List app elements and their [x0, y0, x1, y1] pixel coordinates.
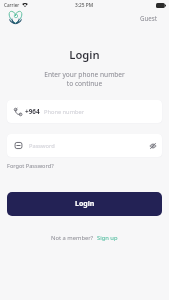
staticText: Password: [29, 142, 55, 150]
staticText: Phone number: [44, 108, 85, 116]
button[interactable]: Password: [7, 134, 162, 157]
staticText: Enter your phone number to continue: [0, 70, 169, 88]
staticText: Login: [0, 47, 169, 62]
button[interactable]: Guest: [140, 14, 158, 22]
button[interactable]: Login: [7, 192, 162, 216]
staticText: Sign up: [97, 234, 118, 242]
staticText: Login: [75, 199, 95, 209]
staticText: Carrier: [4, 2, 20, 8]
staticText: Forgot Password?: [7, 162, 54, 170]
staticText: Not a member?: [51, 234, 94, 242]
staticText: 3:25 PM: [75, 2, 94, 9]
staticText: Guest: [140, 14, 158, 22]
button[interactable]: Toggle password visibility: [146, 139, 159, 152]
staticText: +964: [25, 107, 40, 116]
button[interactable]: Sign up: [97, 234, 118, 242]
button[interactable]: Forgot Password?: [5, 160, 56, 172]
button[interactable]: +964: [7, 100, 162, 123]
